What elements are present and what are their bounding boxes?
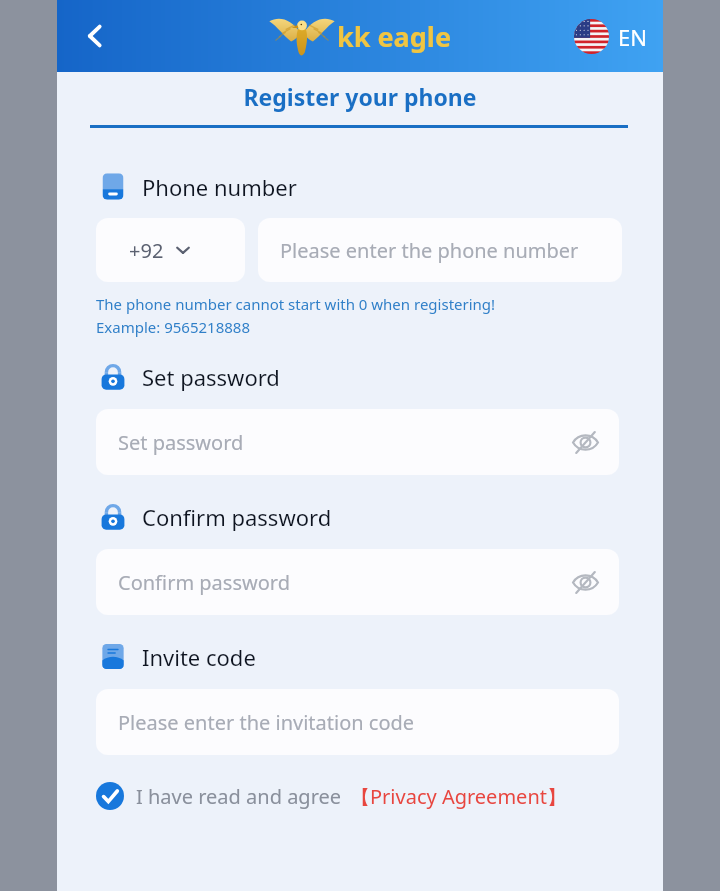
button[interactable]: Confirm password (96, 549, 619, 615)
staticText: Example: 9565218888 (96, 317, 250, 337)
button[interactable]: Please enter the invitation code (96, 689, 619, 755)
staticText: Confirm password (142, 502, 332, 532)
button[interactable]: Show password (565, 562, 605, 602)
staticText: kk eagle (337, 18, 452, 55)
button[interactable]: Agree to privacy agreement (96, 782, 647, 810)
staticText: Set password (118, 429, 244, 456)
staticText: Please enter the invitation code (118, 709, 415, 736)
other: Agree to privacy agreement (96, 782, 124, 810)
staticText: +92 (129, 237, 164, 264)
staticText: EN (618, 22, 647, 52)
button[interactable]: Show password (565, 422, 605, 462)
button[interactable]: EN (574, 19, 647, 54)
staticText: Set password (142, 362, 280, 392)
button[interactable]: +92 (96, 218, 245, 282)
staticText: Invite code (142, 642, 256, 672)
staticText: Phone number (142, 172, 297, 202)
button[interactable]: Please enter the phone number (258, 218, 622, 282)
staticText: Confirm password (118, 569, 290, 596)
button[interactable]: 【Privacy Agreement】 (350, 783, 567, 810)
staticText: The phone number cannot start with 0 whe… (96, 294, 496, 314)
staticText: Register your phone (57, 81, 663, 112)
staticText: Please enter the phone number (280, 237, 579, 264)
button[interactable]: Set password (96, 409, 619, 475)
staticText: I have read and agree (136, 783, 342, 810)
button[interactable]: Back (69, 10, 121, 62)
